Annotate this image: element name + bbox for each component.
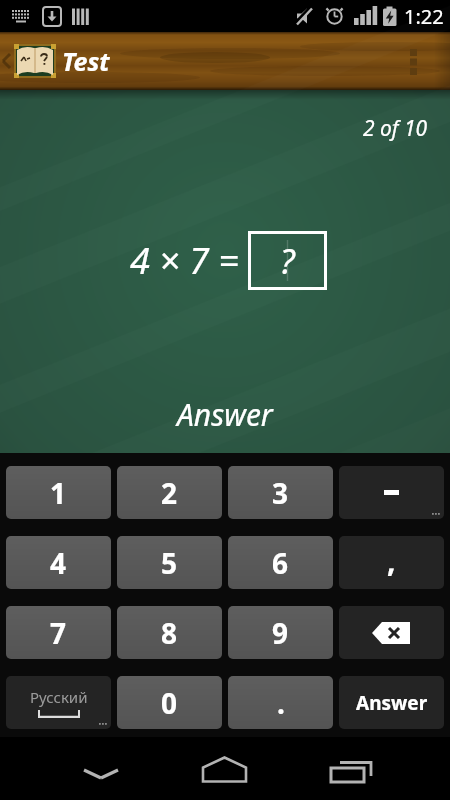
staticText: . <box>277 684 285 722</box>
button[interactable]: , <box>339 536 444 589</box>
staticText: , <box>387 540 396 581</box>
staticText: 7 <box>50 614 67 652</box>
staticText: 8 <box>161 614 178 652</box>
staticText: 3 <box>272 474 289 512</box>
button[interactable]: Answer <box>165 390 285 439</box>
button[interactable]: 7 <box>6 606 111 659</box>
staticText: 4 <box>50 544 67 582</box>
button[interactable]: 4 <box>6 536 111 589</box>
button[interactable]: 8 <box>117 606 222 659</box>
staticText: 4 × 7 = <box>130 236 239 285</box>
button[interactable] <box>0 737 150 800</box>
button[interactable]: 9 <box>228 606 333 659</box>
staticText: 2 <box>161 474 178 512</box>
staticText: ? <box>280 238 295 284</box>
button[interactable]: 2 <box>117 466 222 519</box>
button[interactable] <box>406 32 450 90</box>
button[interactable]: 0 <box>117 676 222 729</box>
button[interactable] <box>300 737 450 800</box>
button[interactable]: 1 <box>6 466 111 519</box>
staticText: 6 <box>272 544 289 582</box>
staticText: 5 <box>161 544 178 582</box>
staticText: Answer <box>177 394 273 435</box>
staticText: Test <box>62 44 110 78</box>
button[interactable]: 3 <box>228 466 333 519</box>
button[interactable] <box>150 737 300 800</box>
staticText: Answer <box>356 690 428 716</box>
button[interactable]: Answer <box>339 676 444 729</box>
staticText: 9 <box>272 614 289 652</box>
staticText: 2 of 10 <box>363 114 428 143</box>
staticText: Русский <box>30 687 88 707</box>
button[interactable]: 5 <box>117 536 222 589</box>
button[interactable] <box>339 606 444 659</box>
staticText: 1 <box>50 474 67 512</box>
button[interactable] <box>339 466 444 519</box>
button[interactable]: . <box>228 676 333 729</box>
button[interactable]: Русский <box>6 676 111 729</box>
button[interactable]: 6 <box>228 536 333 589</box>
staticText: 0 <box>161 684 178 722</box>
staticText: 1:22 <box>404 3 444 30</box>
